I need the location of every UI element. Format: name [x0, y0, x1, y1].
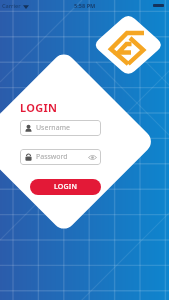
button[interactable]: Username: [20, 120, 101, 136]
button[interactable]: App logo: [108, 23, 150, 65]
other: Show password: [88, 153, 97, 162]
button[interactable]: Password: [20, 149, 101, 165]
staticText: LOGIN: [20, 100, 58, 115]
staticText: Username: [36, 123, 71, 133]
staticText: LOGIN: [54, 182, 78, 192]
staticText: Password: [36, 152, 68, 162]
button[interactable]: LOGIN: [30, 179, 101, 195]
staticText: 5:58 PM: [74, 2, 96, 10]
staticText: Carrier: [2, 2, 21, 10]
